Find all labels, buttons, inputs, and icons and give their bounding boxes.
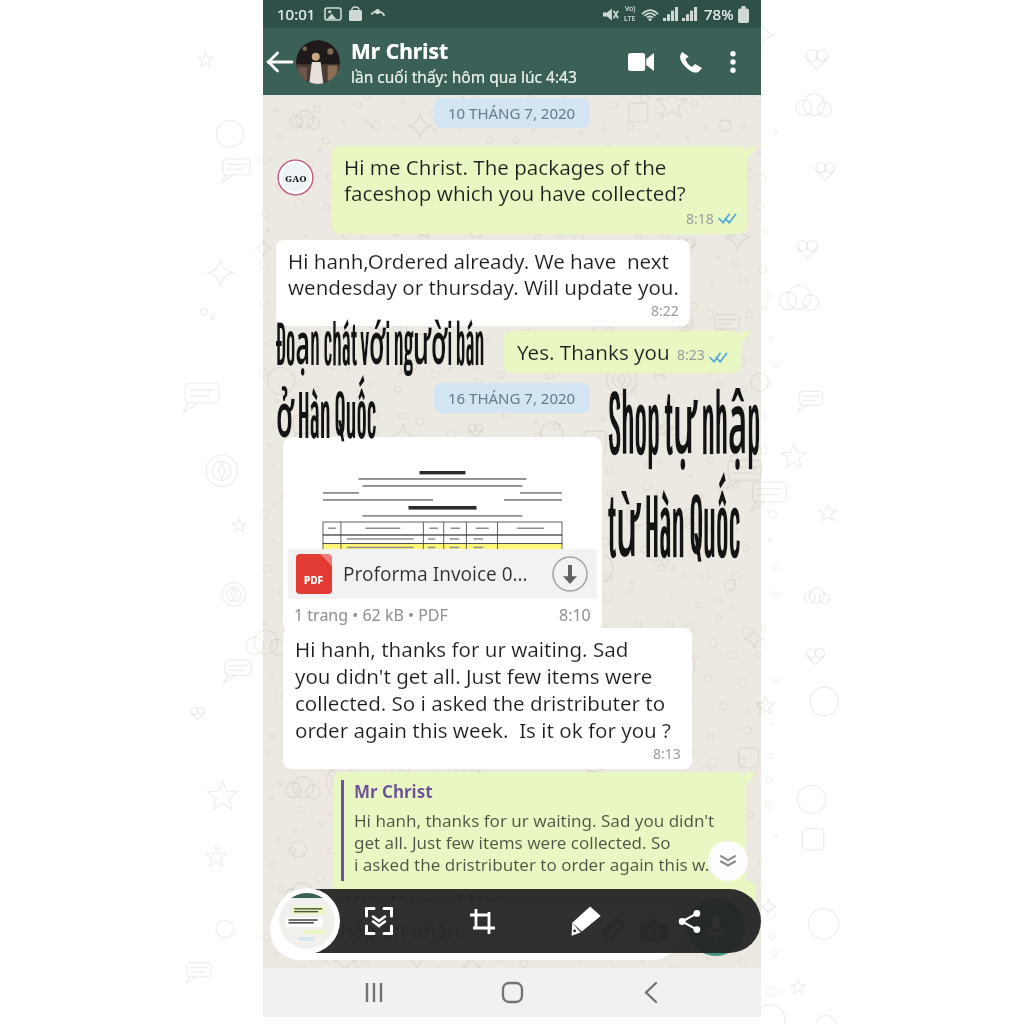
staticText: Vo): [625, 4, 636, 14]
button[interactable]: Back: [622, 968, 680, 1017]
button[interactable]: Download: [551, 555, 589, 593]
button[interactable]: Scroll capture: [359, 901, 399, 941]
staticText: Hi hanh, thanks for ur waiting. Sad you …: [295, 635, 671, 744]
button[interactable]: Message input: [270, 900, 682, 960]
staticText: 8:18: [686, 209, 714, 228]
staticText: 8:10: [559, 604, 591, 626]
staticText: Hi me Christ. The packages of the facesh…: [344, 153, 686, 207]
button[interactable]: Record voice message: [687, 898, 745, 956]
button[interactable]: Back: [263, 28, 296, 95]
button[interactable]: Scroll to bottom: [708, 841, 748, 881]
button[interactable]: Screenshot preview: [279, 893, 335, 949]
button[interactable]: Mr Christ: [341, 780, 738, 882]
button[interactable]: Hi hanh,Ordered already. We have next we…: [288, 247, 679, 320]
staticText: 8:13: [653, 744, 681, 763]
staticText: Mr Christ: [351, 37, 449, 66]
staticText: ở Hàn Quốc: [276, 371, 376, 455]
staticText: lần cuối thấy: hôm qua lúc 4:43: [351, 66, 577, 87]
staticText: 16 THÁNG 7, 2020: [448, 388, 576, 408]
staticText: 78%: [704, 4, 734, 24]
staticText: 10:01: [277, 4, 316, 24]
button[interactable]: Video call: [615, 36, 667, 88]
staticText: Mr Christ: [354, 780, 433, 803]
button[interactable]: Sender avatar: [277, 159, 314, 196]
staticText: Yes. No problem.: [347, 888, 511, 916]
staticText: Đoạn chát với người bán: [276, 303, 485, 381]
button[interactable]: Voice call: [667, 39, 713, 85]
staticText: 8:23: [677, 345, 705, 364]
staticText: Yes. Thanks you: [517, 338, 670, 366]
staticText: 8:22: [651, 301, 679, 320]
staticText: 1 trang • 62 kB • PDF: [294, 604, 448, 626]
button[interactable]: Mr Christ: [351, 37, 615, 87]
button[interactable]: Hi me Christ. The packages of the facesh…: [344, 153, 736, 228]
button[interactable]: PDF: [283, 437, 602, 632]
staticText: PDF: [304, 573, 324, 587]
button[interactable]: More options: [713, 42, 753, 82]
button[interactable]: Share: [669, 901, 709, 941]
button[interactable]: Home: [483, 968, 541, 1017]
button[interactable]: Recents: [344, 968, 402, 1017]
staticText: từ Hàn Quốc: [608, 466, 740, 580]
staticText: Proforma Invoice 0…: [343, 561, 528, 587]
button[interactable]: Yes. Thanks you: [517, 338, 727, 366]
staticText: 10 THÁNG 7, 2020: [448, 103, 576, 123]
staticText: LTE: [624, 14, 636, 24]
staticText: GAO: [285, 172, 307, 184]
button[interactable]: Hi hanh, thanks for ur waiting. Sad you …: [295, 635, 681, 763]
staticText: nhập tin nhắn: [328, 917, 460, 944]
button[interactable]: Profile photo: [296, 40, 340, 84]
staticText: Shop tự nhập: [608, 363, 760, 477]
staticText: Hi hanh,Ordered already. We have next we…: [288, 247, 679, 301]
button[interactable]: Draw: [566, 901, 606, 941]
staticText: Hi hanh, thanks for ur waiting. Sad you …: [354, 809, 719, 876]
button[interactable]: Crop: [462, 901, 502, 941]
